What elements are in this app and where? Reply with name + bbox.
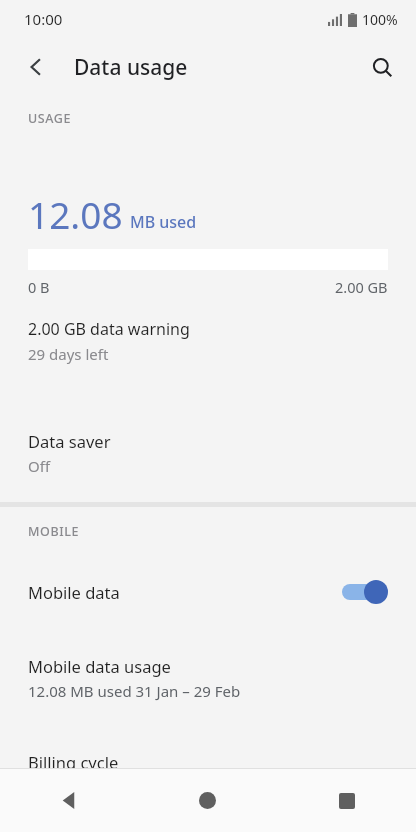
button[interactable]: Mobile data [0, 577, 416, 607]
staticText: MB used [130, 211, 197, 233]
staticText: Data saver [28, 430, 111, 452]
button[interactable]: Mobile data toggle [340, 577, 392, 607]
button[interactable]: Data saver [0, 428, 416, 478]
button[interactable]: Home [138, 792, 277, 809]
staticText: Data usage [74, 53, 188, 82]
staticText: Mobile data [28, 581, 120, 603]
staticText: 100% [362, 10, 398, 29]
button[interactable]: Search [358, 43, 406, 91]
button[interactable]: Billing cycle [0, 751, 416, 773]
staticText: Billing cycle [28, 751, 119, 773]
staticText: MOBILE [28, 523, 80, 540]
staticText: 2.00 GB data warning [28, 318, 190, 340]
staticText: 2.00 GB [335, 277, 388, 297]
staticText: 29 days left [28, 344, 109, 364]
staticText: USAGE [28, 110, 72, 127]
staticText: 12.08 MB used 31 Jan – 29 Feb [28, 681, 241, 701]
staticText: 0 B [28, 277, 50, 297]
staticText: Off [28, 456, 51, 476]
button[interactable]: Back [0, 792, 138, 809]
button[interactable]: 2.00 GB data warning [0, 316, 416, 366]
button[interactable]: Back [12, 43, 60, 91]
button[interactable]: Recent apps [277, 793, 416, 809]
staticText: Mobile data usage [28, 655, 171, 677]
staticText: 10:00 [24, 9, 63, 29]
button[interactable]: Mobile data usage [0, 653, 416, 703]
staticText: 12.08 [28, 189, 123, 239]
